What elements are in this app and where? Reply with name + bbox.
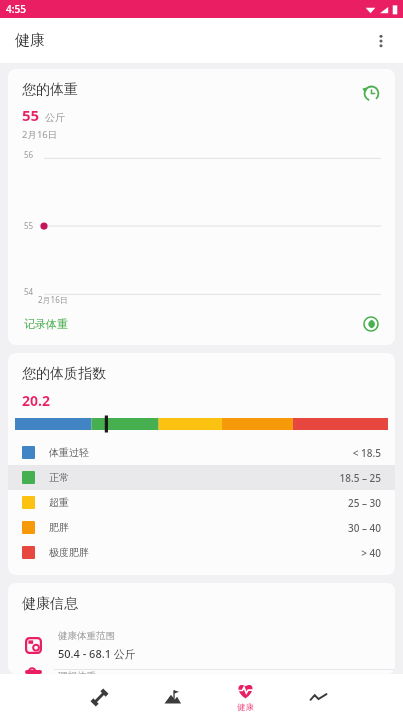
staticText: 2月16日 [22, 128, 58, 141]
button[interactable]: 体重过轻 [8, 440, 395, 465]
button[interactable]: 记录体重 [18, 312, 74, 336]
button[interactable]: Goals [136, 674, 209, 720]
staticText: 体重过轻 [49, 446, 352, 459]
staticText: 54 [24, 286, 34, 297]
staticText: 25 – 30 [347, 496, 381, 510]
staticText: 肥胖 [49, 521, 347, 534]
staticText: 极度肥胖 [49, 546, 361, 559]
staticText: 您的体质指数 [22, 365, 106, 383]
staticText: > 40 [361, 546, 381, 560]
staticText: 您的体重 [22, 81, 78, 99]
button[interactable]: 肥胖 [8, 515, 395, 540]
button[interactable]: 理想体重 [8, 670, 395, 674]
staticText: 理想体重 [58, 670, 96, 674]
button[interactable]: More options [359, 19, 403, 63]
staticText: 50.4 - 68.1 公斤 [58, 646, 136, 661]
staticText: 超重 [49, 496, 347, 509]
staticText: 健康 [237, 702, 254, 713]
staticText: 正常 [49, 471, 339, 484]
staticText: 健康 [15, 31, 45, 50]
button[interactable]: 正常 [8, 465, 395, 490]
staticText: 健康体重范围 [58, 630, 115, 642]
staticText: 55 [22, 105, 40, 125]
staticText: 56 [24, 149, 34, 160]
button[interactable]: Weight goal [355, 308, 387, 340]
staticText: 健康信息 [22, 595, 78, 613]
button[interactable]: 超重 [8, 490, 395, 515]
staticText: 55 [24, 220, 34, 231]
staticText: 记录体重 [24, 317, 68, 331]
staticText: 公斤 [45, 111, 65, 124]
button[interactable]: History [353, 75, 389, 111]
staticText: 30 – 40 [347, 521, 381, 535]
staticText: 18.5 – 25 [339, 471, 381, 485]
button[interactable]: Workout [62, 674, 136, 720]
button[interactable]: Trends [282, 674, 355, 720]
button[interactable]: 极度肥胖 [8, 540, 395, 565]
staticText: 20.2 [22, 391, 50, 410]
staticText: 2月16日 [38, 294, 68, 305]
staticText: < 18.5 [352, 446, 381, 460]
button[interactable]: 健康体重范围 [8, 621, 395, 669]
button[interactable]: Health [209, 674, 282, 720]
staticText: 4:55 [6, 2, 26, 16]
